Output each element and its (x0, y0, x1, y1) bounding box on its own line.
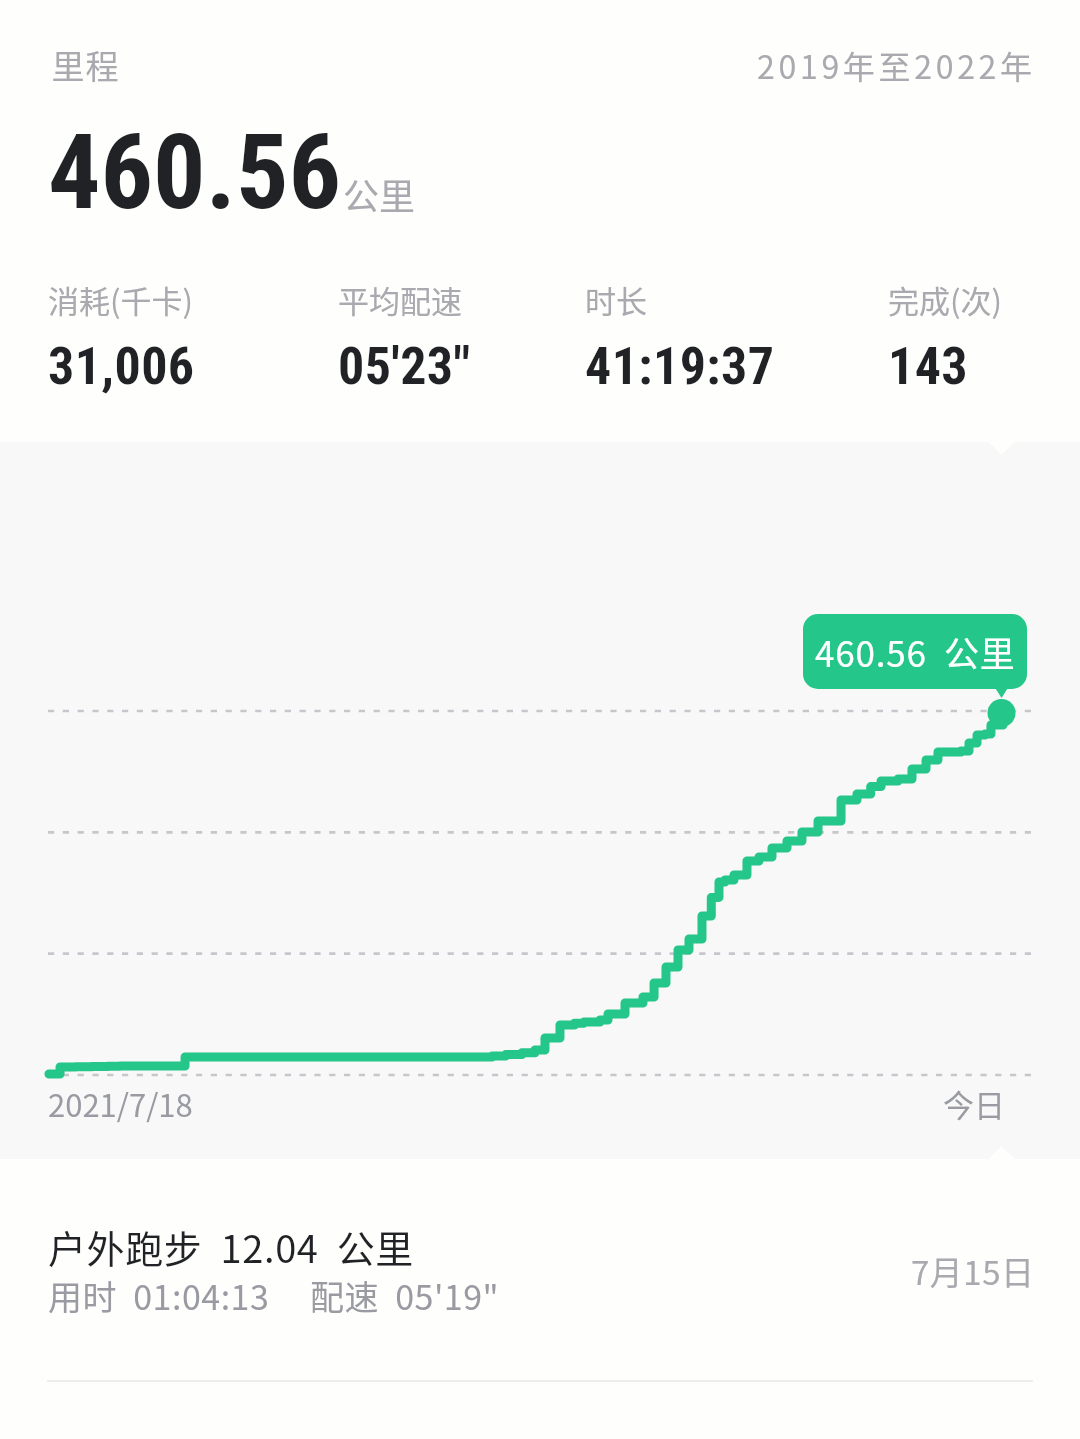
button[interactable]: 户外跑步 12.04 公里 (0, 1159, 1080, 1439)
staticText: 2021/7/18 (48, 1081, 193, 1126)
other: Cumulative distance chart (0, 442, 1080, 1159)
button[interactable]: 时长 (585, 277, 775, 397)
staticText: 今日 (943, 1081, 1005, 1126)
staticText: 2019年至2022年 (757, 42, 1036, 88)
staticText: 05'23" (338, 336, 471, 397)
staticText: 460.56 公里 (815, 626, 1016, 677)
staticText: 143 (888, 336, 969, 397)
staticText: 用时 01:04:13 配速 05'19" (48, 1271, 500, 1320)
button[interactable]: 完成(次) (888, 277, 1002, 397)
staticText: 里程 (51, 41, 119, 89)
staticText: 公里 (343, 168, 416, 220)
staticText: 户外跑步 12.04 公里 (48, 1219, 414, 1274)
button[interactable]: 2019年至2022年 (740, 28, 1048, 90)
staticText: 平均配速 (338, 277, 462, 322)
staticText: 消耗(千卡) (48, 277, 193, 322)
button[interactable]: 460.56 公里 (803, 614, 1027, 689)
staticText: 完成(次) (888, 277, 1002, 322)
other: Separator (0, 1159, 1080, 1439)
staticText: 41:19:37 (585, 336, 775, 397)
button[interactable]: 平均配速 (338, 277, 471, 397)
button[interactable]: 消耗(千卡) (48, 277, 195, 397)
staticText: 460.56 (48, 112, 342, 234)
staticText: 时长 (585, 277, 647, 322)
staticText: 7月15日 (911, 1247, 1035, 1295)
staticText: 31,006 (48, 336, 195, 397)
